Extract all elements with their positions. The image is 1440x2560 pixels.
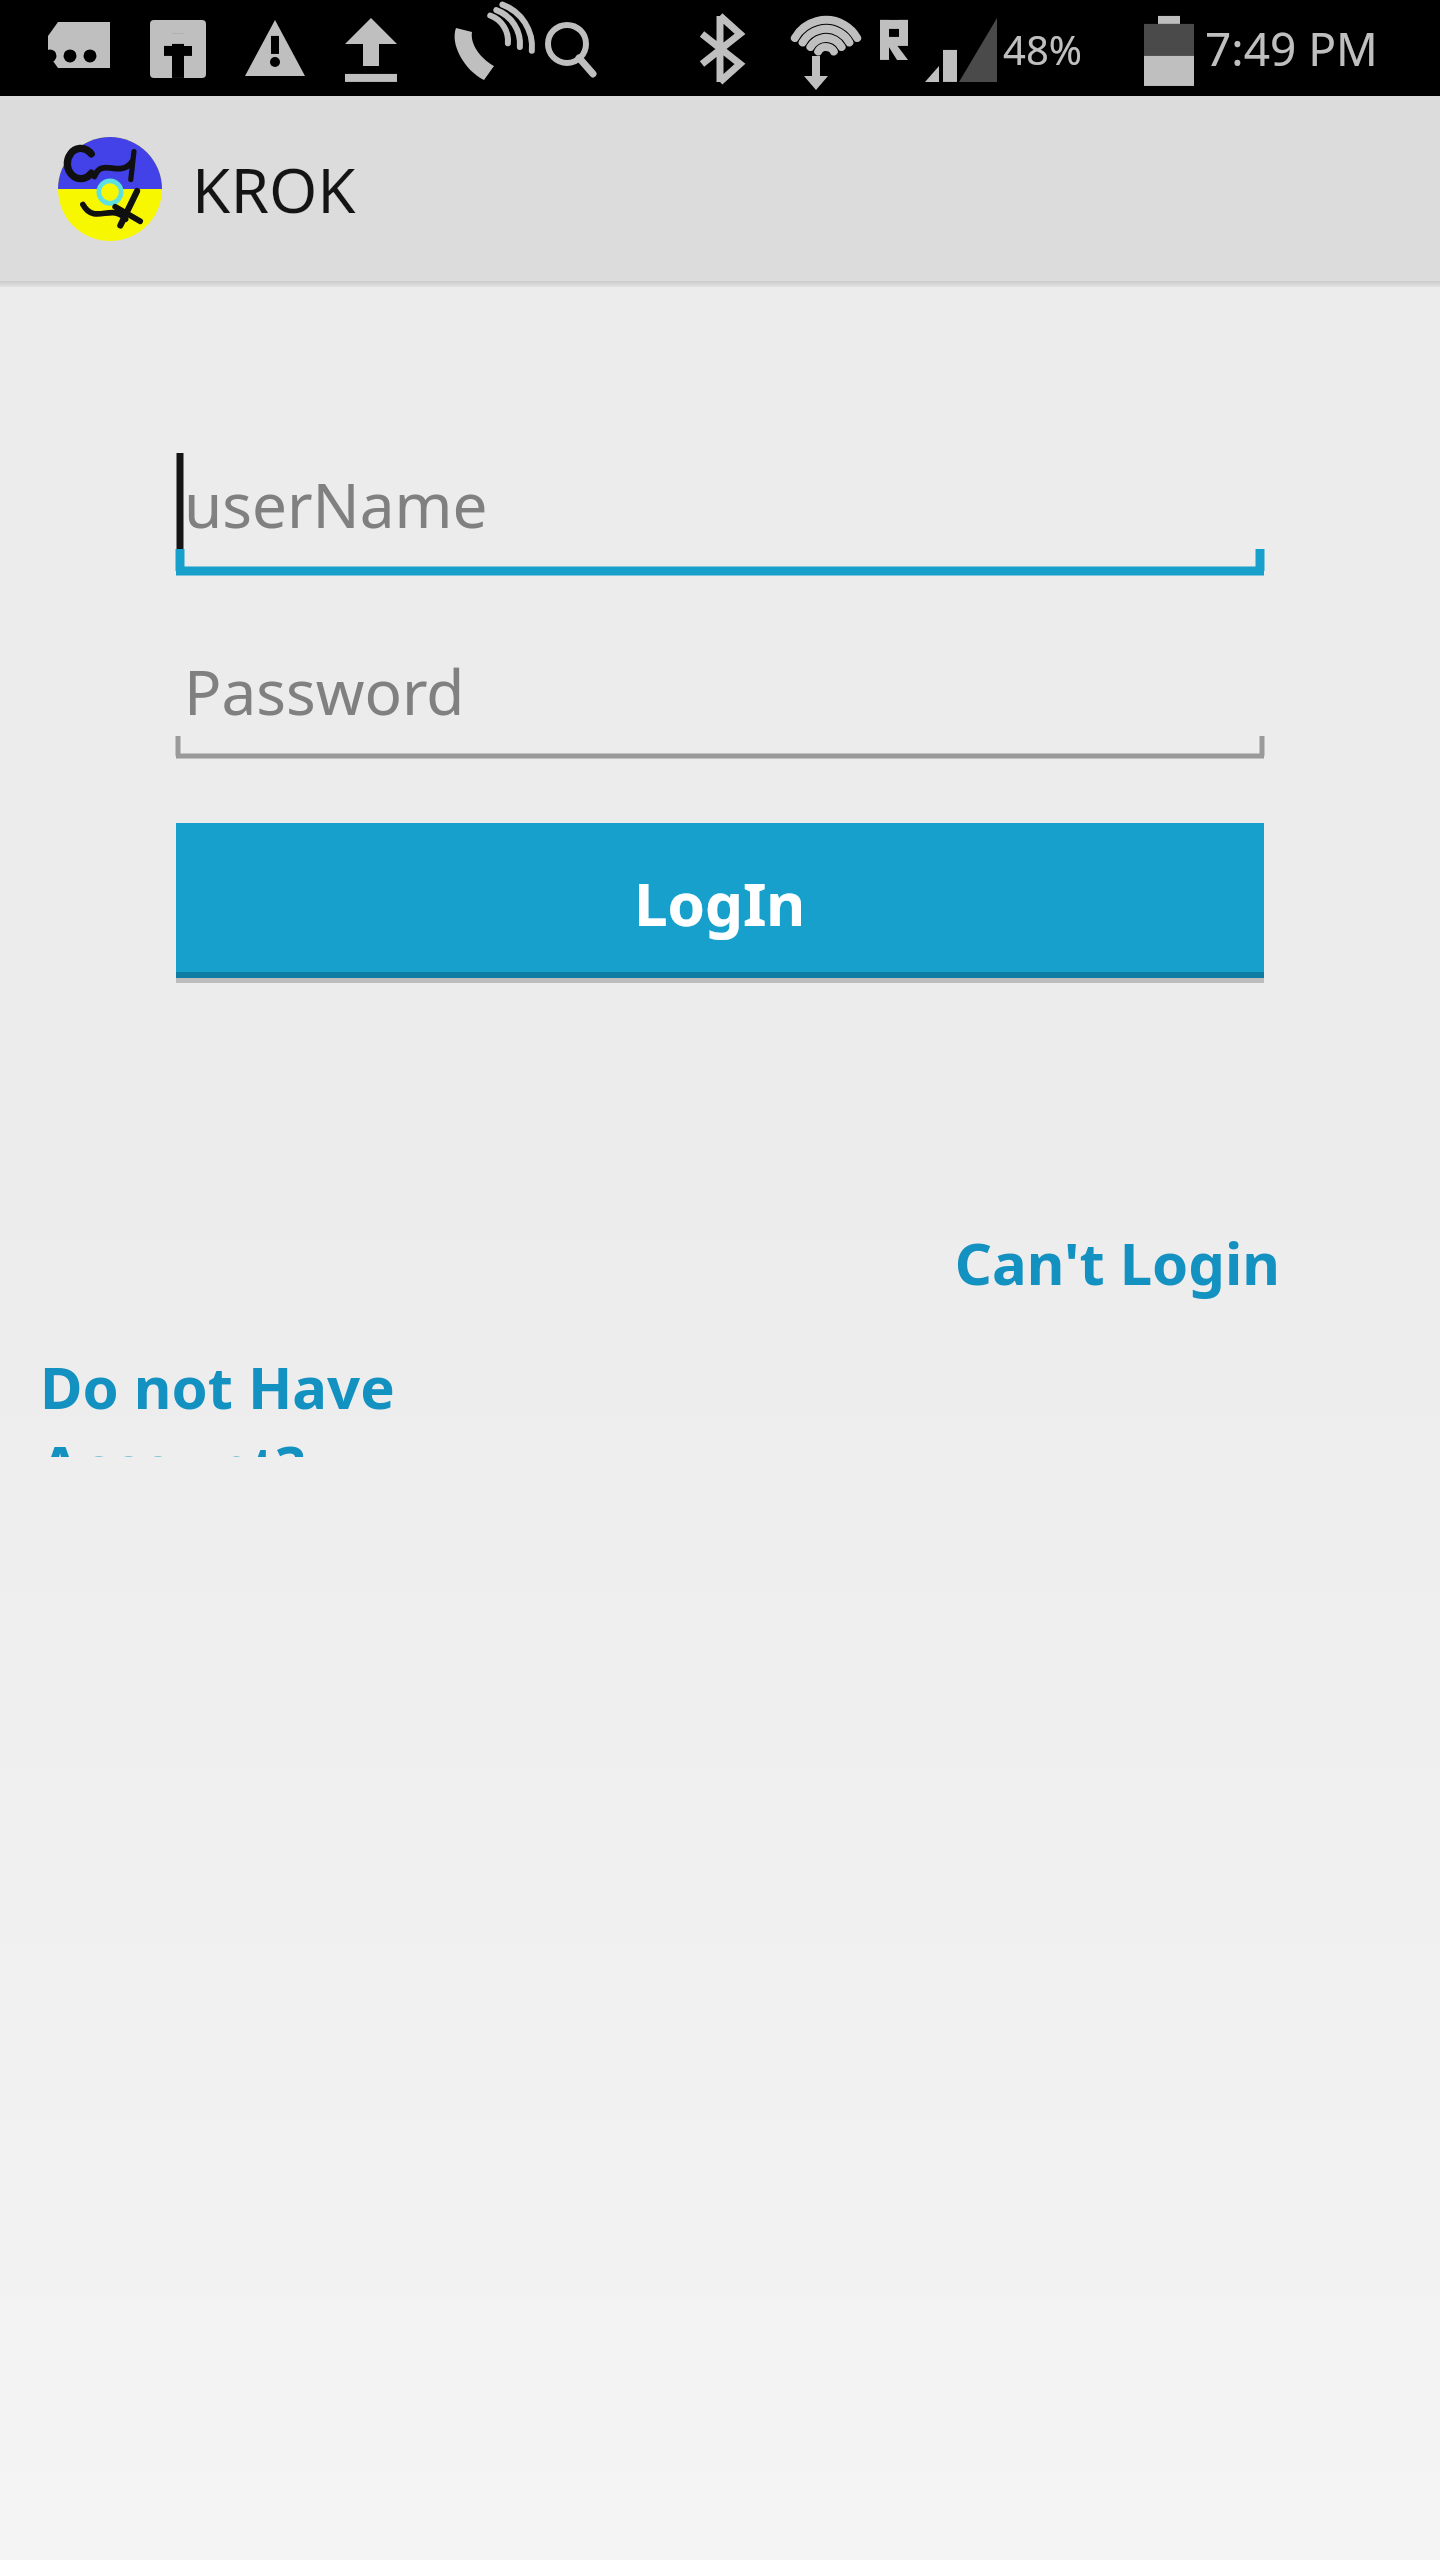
staticText: Can't Login: [954, 1223, 1280, 1302]
staticText: 7:49 PM: [1205, 17, 1378, 80]
staticText: Do not Have Account?: [40, 1347, 660, 1457]
button[interactable]: Do not Have Account?: [40, 1347, 660, 1457]
button[interactable]: Crack and Krok logo: [58, 137, 162, 241]
staticText: Password: [184, 649, 465, 733]
staticText: userName: [184, 462, 488, 546]
button[interactable]: Can't Login: [900, 1207, 1280, 1317]
staticText: LogIn: [634, 862, 806, 944]
staticText: 48%: [1003, 22, 1082, 76]
staticText: KROK: [192, 147, 356, 231]
button[interactable]: userName: [176, 437, 1264, 587]
button[interactable]: Password: [176, 622, 1264, 772]
button[interactable]: LogIn: [176, 823, 1264, 983]
